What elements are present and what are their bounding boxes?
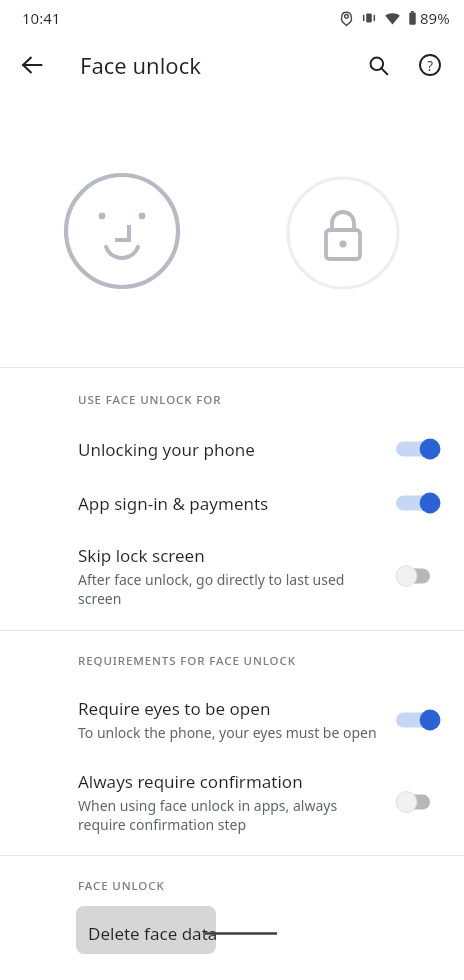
button[interactable]: App sign-in & payments [0, 476, 464, 530]
staticText: To unlock the phone, your eyes must be o… [78, 723, 377, 742]
button[interactable]: Off [396, 789, 442, 815]
button[interactable]: Require eyes to be open [0, 683, 464, 756]
staticText: When using face unlock in apps, always r… [78, 796, 382, 834]
staticText: Face unlock [80, 50, 201, 80]
staticText: Delete face data [88, 922, 218, 945]
staticText: Unlocking your phone [78, 438, 255, 461]
staticText: Always require confirmation [78, 770, 303, 793]
staticText: 89% [420, 8, 450, 28]
staticText: USE FACE UNLOCK FOR [78, 392, 464, 408]
staticText: App sign-in & payments [78, 492, 269, 515]
button[interactable]: Search [356, 43, 400, 87]
staticText: REQUIREMENTS FOR FACE UNLOCK [78, 653, 464, 669]
button[interactable]: Always require confirmation [0, 756, 464, 848]
staticText: 10:41 [22, 8, 61, 28]
staticText: After face unlock, go directly to last u… [78, 570, 382, 608]
button[interactable] [76, 906, 216, 954]
button[interactable]: Back [10, 43, 54, 87]
button[interactable]: Skip lock screen [0, 530, 464, 622]
button[interactable]: On [396, 707, 442, 733]
button[interactable]: Help [408, 43, 452, 87]
button[interactable]: Unlocking your phone [0, 422, 464, 476]
staticText: ? [427, 56, 434, 75]
staticText: Require eyes to be open [78, 697, 271, 720]
button[interactable]: On [396, 436, 442, 462]
button[interactable]: Off [396, 563, 442, 589]
staticText: FACE UNLOCK [78, 878, 464, 894]
button[interactable]: On [396, 490, 442, 516]
staticText: Skip lock screen [78, 544, 205, 567]
